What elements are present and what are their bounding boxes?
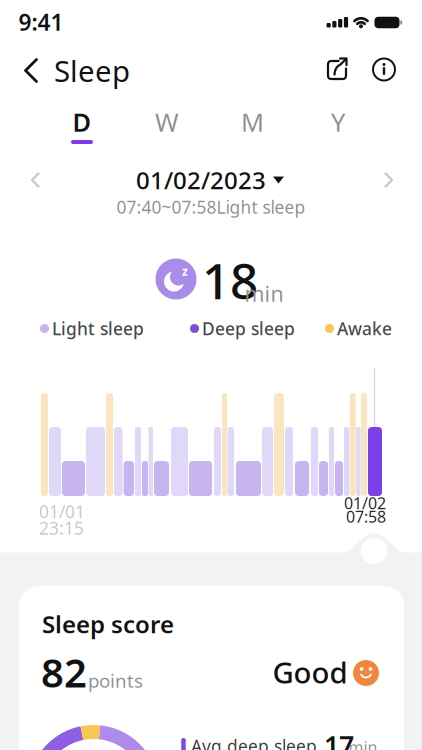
staticText: Avg deep sleep	[191, 734, 317, 750]
staticText: 9:41	[18, 7, 63, 37]
staticText: Awake	[337, 317, 392, 340]
button[interactable]: W	[147, 109, 187, 135]
staticText: 18	[202, 247, 258, 313]
staticText: points	[88, 668, 143, 693]
button[interactable]	[23, 57, 49, 83]
button[interactable]	[372, 57, 396, 81]
staticText: D	[72, 105, 91, 139]
staticText: Sleep score	[42, 608, 174, 640]
button[interactable]: Y	[318, 109, 358, 135]
staticText: min	[348, 736, 377, 750]
button[interactable]	[30, 171, 42, 188]
button[interactable]: 01/02/2023	[136, 164, 284, 196]
button[interactable]	[324, 57, 349, 82]
staticText: Deep sleep	[202, 317, 295, 340]
staticText: Sleep	[54, 51, 130, 90]
staticText: z	[182, 263, 188, 279]
staticText: M	[241, 105, 264, 139]
staticText: Light sleep	[52, 317, 144, 340]
staticText: min	[244, 279, 283, 308]
button[interactable]: D	[62, 109, 102, 135]
staticText: 07:58	[346, 506, 386, 527]
staticText: 07:40~07:58Light sleep	[116, 195, 305, 218]
staticText: 01/02/2023	[136, 164, 266, 196]
staticText: 01/02	[344, 492, 386, 514]
button[interactable]	[382, 171, 394, 188]
staticText: Y	[331, 105, 345, 139]
staticText: Good	[272, 652, 347, 691]
staticText: 17	[324, 727, 354, 750]
staticText: 82	[41, 645, 87, 698]
staticText: 01/01	[39, 500, 85, 523]
staticText: W	[155, 105, 179, 139]
button[interactable]: M	[232, 109, 272, 135]
staticText: 23:15	[39, 516, 84, 539]
